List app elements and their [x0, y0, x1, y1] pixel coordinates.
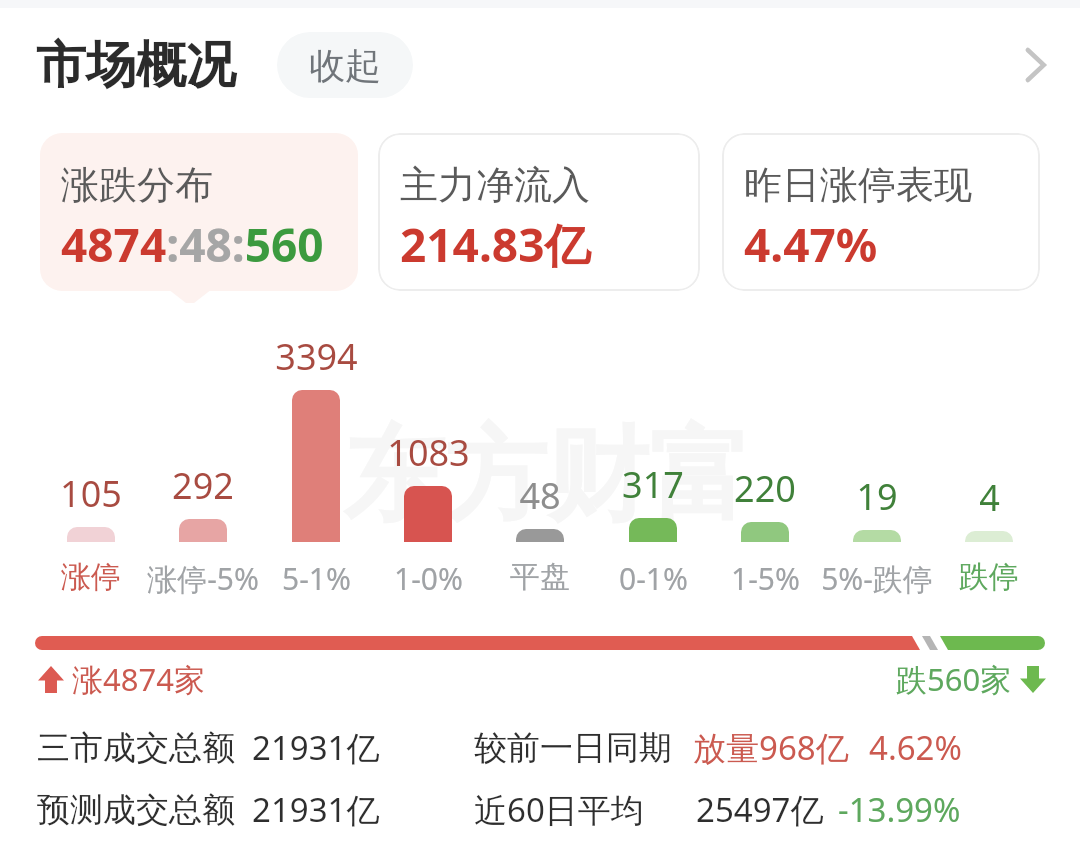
staticText: 涨4874家: [72, 658, 205, 700]
staticText: 涨跌分布: [61, 161, 213, 209]
staticText: 3394: [275, 332, 358, 381]
staticText: 昨日涨停表现: [744, 161, 972, 209]
staticText: 涨停-5%: [147, 558, 259, 599]
staticText: 较前一日同期: [474, 727, 672, 769]
staticText: 市场概况: [36, 34, 236, 97]
button[interactable]: 跌560家: [896, 658, 1046, 700]
staticText: 三市成交总额: [37, 727, 235, 769]
staticText: 4: [979, 473, 1000, 522]
staticText: 25497亿: [696, 787, 824, 832]
staticText: 4.62%: [869, 725, 962, 770]
staticText: 东方财富: [343, 412, 751, 540]
staticText: 跌停: [959, 558, 1019, 596]
staticText: 收起: [309, 43, 381, 88]
button[interactable]: 收起: [277, 32, 413, 98]
staticText: 放量968亿: [693, 725, 849, 770]
staticText: 1-5%: [731, 558, 800, 599]
staticText: 48: [519, 471, 561, 520]
staticText: 跌560家: [896, 658, 1012, 700]
staticText: 1-0%: [394, 558, 463, 599]
staticText: 0-1%: [619, 558, 688, 599]
staticText: 5%-跌停: [821, 558, 933, 599]
staticText: 近60日平均: [474, 787, 644, 832]
staticText: 21931亿: [252, 787, 380, 832]
staticText: 220: [734, 464, 796, 513]
staticText: 主力净流入: [400, 161, 590, 209]
button[interactable]: 涨跌分布: [40, 133, 358, 291]
staticText: 预测成交总额: [37, 789, 235, 831]
staticText: 317: [622, 460, 684, 509]
staticText: 1083: [387, 428, 470, 477]
staticText: 292: [172, 461, 234, 510]
staticText: 涨停: [61, 558, 121, 596]
button[interactable]: 主力净流入: [378, 133, 700, 291]
button[interactable]: 涨4874家: [38, 658, 205, 700]
staticText: 105: [60, 469, 122, 518]
staticText: 5-1%: [282, 558, 351, 599]
staticText: 21931亿: [252, 725, 380, 770]
staticText: 214.83亿: [400, 213, 591, 276]
staticText: -13.99%: [838, 787, 961, 832]
button[interactable]: 昨日涨停表现: [722, 133, 1040, 291]
staticText: 19: [856, 472, 898, 521]
staticText: 4.47%: [744, 213, 878, 276]
staticText: 平盘: [510, 558, 570, 596]
staticText: 4874:48:560: [61, 213, 324, 276]
button[interactable]: Expand: [1003, 33, 1067, 97]
